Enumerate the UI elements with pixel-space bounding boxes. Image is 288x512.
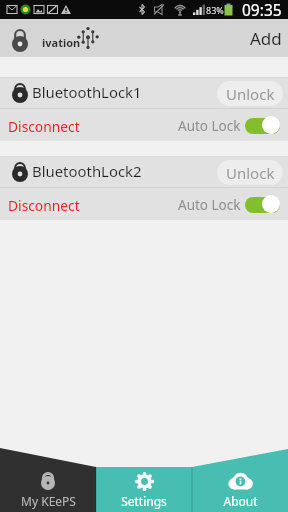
staticText: My KEePS: [21, 493, 76, 509]
button[interactable]: Disconnect: [8, 195, 80, 214]
button[interactable]: BluetoothLock1: [0, 78, 288, 108]
staticText: Settings: [121, 493, 167, 509]
button[interactable]: My KEePS: [0, 448, 96, 512]
staticText: 83%: [206, 4, 224, 16]
staticText: Auto Lock: [178, 196, 241, 214]
button[interactable]: Settings: [96, 448, 192, 512]
staticText: 09:35: [242, 0, 282, 18]
button[interactable]: About: [192, 448, 288, 512]
staticText: Add: [250, 27, 282, 49]
staticText: BluetoothLock2: [32, 161, 142, 181]
button[interactable]: BluetoothLock2: [0, 157, 288, 187]
staticText: Auto Lock: [178, 117, 241, 135]
staticText: ivation: [42, 35, 81, 50]
staticText: BluetoothLock1: [32, 82, 142, 102]
button[interactable]: Unlock: [217, 160, 283, 185]
button[interactable]: Add: [240, 19, 288, 57]
button[interactable]: Auto Lock toggle: [245, 195, 280, 213]
staticText: Unlock: [226, 84, 275, 104]
button[interactable]: Auto Lock toggle: [245, 116, 280, 134]
staticText: Disconnect: [8, 196, 80, 215]
staticText: Unlock: [226, 163, 275, 183]
staticText: Disconnect: [8, 117, 80, 136]
button[interactable]: Disconnect: [8, 116, 80, 135]
staticText: About: [223, 493, 258, 509]
button[interactable]: Unlock: [217, 81, 283, 106]
